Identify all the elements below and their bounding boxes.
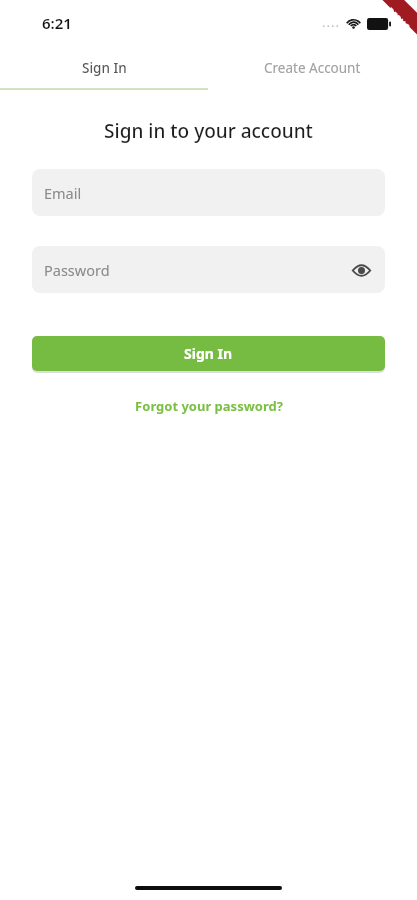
staticText: Forgot your password? bbox=[135, 397, 283, 415]
button[interactable]: Create Account bbox=[208, 48, 417, 88]
button[interactable]: Email bbox=[32, 169, 385, 216]
staticText: 6:21 bbox=[42, 13, 72, 33]
button[interactable]: Show password bbox=[347, 256, 375, 284]
staticText: Email bbox=[44, 183, 82, 203]
staticText: Sign In bbox=[82, 59, 127, 77]
staticText: Sign In bbox=[184, 344, 233, 363]
staticText: DEBUG bbox=[385, 5, 413, 32]
staticText: Create Account bbox=[264, 59, 361, 77]
button[interactable]: Sign In bbox=[32, 336, 385, 371]
button[interactable]: Forgot your password? bbox=[0, 397, 417, 415]
staticText: Password bbox=[44, 260, 110, 280]
staticText: Sign in to your account bbox=[0, 118, 417, 144]
button[interactable]: Sign In bbox=[0, 48, 208, 88]
button[interactable]: Password bbox=[32, 246, 385, 293]
